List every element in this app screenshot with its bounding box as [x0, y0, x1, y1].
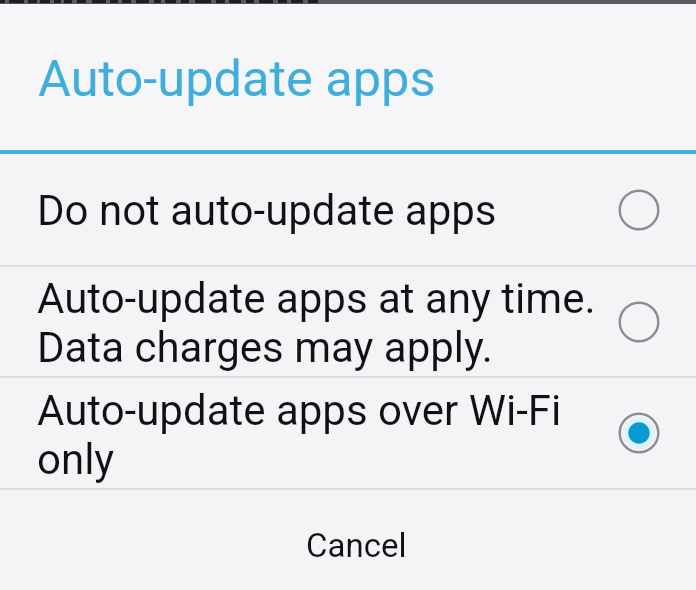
staticText: Cancel: [306, 526, 407, 565]
button[interactable]: Cancel: [0, 490, 696, 590]
staticText: Auto-update apps: [38, 49, 436, 108]
button[interactable]: Auto-update apps at any time. Data charg…: [0, 267, 696, 376]
button[interactable]: Auto-update apps over Wi-Fi only: [0, 378, 696, 488]
staticText: Auto-update apps at any time. Data charg…: [37, 274, 596, 372]
button[interactable]: Do not auto-update apps: [0, 154, 696, 265]
staticText: Auto-update apps over Wi-Fi only: [37, 386, 562, 484]
staticText: Do not auto-update apps: [37, 186, 497, 235]
